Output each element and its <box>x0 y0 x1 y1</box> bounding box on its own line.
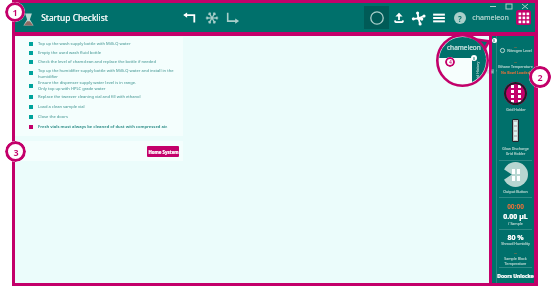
staticText: Load a clean sample vial <box>38 104 85 110</box>
button[interactable]: Close <box>520 3 529 9</box>
button[interactable]: Return <box>182 10 197 25</box>
staticText: 0 <box>493 38 496 43</box>
staticText: 0.00 µL <box>503 212 528 222</box>
staticText: 1 <box>12 6 18 18</box>
staticText: Top up the wash supply bottle with Milli… <box>38 41 131 47</box>
button[interactable]: Apps grid <box>516 10 531 25</box>
staticText: Empty the used wash fluid bottle <box>38 50 102 56</box>
button[interactable]: Upload <box>393 12 405 24</box>
staticText: Startup Checklist <box>41 12 108 23</box>
button[interactable]: Home System <box>147 146 179 157</box>
staticText: chameleon <box>472 13 509 23</box>
staticText: 00:00 <box>507 202 524 211</box>
button[interactable]: Check the level of chamclean and replace… <box>29 57 177 67</box>
staticText: Doors Unlocked <box>497 273 534 280</box>
staticText: Grid History <box>479 68 509 73</box>
staticText: No Bowl Loaded <box>501 70 530 75</box>
staticText: ? <box>458 13 462 24</box>
staticText: Home System <box>148 149 179 155</box>
button[interactable]: Grid Holder <box>504 82 527 105</box>
staticText: Top up the humidifier supply bottle with… <box>38 68 177 79</box>
staticText: Sample Block Temperature <box>504 256 527 266</box>
button[interactable]: Maximize <box>504 3 513 9</box>
staticText: Shroud Humidity <box>501 241 530 246</box>
button[interactable]: Ensure the dispenser supply water level … <box>29 79 177 92</box>
button[interactable]: Replace the tweezer cleaning vial and fi… <box>29 92 177 102</box>
staticText: Ensure the dispenser supply water level … <box>38 80 137 91</box>
staticText: Check the level of chamclean and replace… <box>38 59 156 65</box>
button[interactable]: Help <box>454 12 466 24</box>
button[interactable]: Workflow <box>412 11 426 25</box>
button[interactable]: Load a clean sample vial <box>29 102 177 111</box>
button[interactable]: Top up the wash supply bottle with Milli… <box>29 39 177 48</box>
button[interactable]: Fresh vials must always be cleaned of du… <box>29 122 177 131</box>
button[interactable]: Grid History <box>492 36 497 283</box>
staticText: -- <box>514 44 517 49</box>
staticText: Grid Holder <box>506 107 526 112</box>
button[interactable]: Status <box>364 6 389 29</box>
staticText: Nitrogen Level <box>507 48 532 53</box>
button[interactable]: Minimize <box>488 3 497 9</box>
staticText: Fresh vials must always be cleaned of du… <box>38 124 168 130</box>
staticText: chameleon <box>447 43 481 52</box>
button[interactable]: App icon <box>20 11 37 28</box>
staticText: Close the doors <box>38 114 68 120</box>
staticText: 2 <box>537 71 543 83</box>
staticText: 3 <box>13 146 19 158</box>
staticText: Grid History <box>475 61 480 82</box>
staticText: 0 <box>473 56 476 61</box>
staticText: Output Button <box>503 189 528 194</box>
button[interactable]: Top up the humidifier supply bottle with… <box>29 67 177 79</box>
button[interactable]: Menu <box>432 11 446 25</box>
staticText: -- <box>514 59 517 64</box>
button[interactable]: Next <box>225 10 240 25</box>
staticText: Replace the tweezer cleaning vial and fi… <box>38 94 141 100</box>
button[interactable]: Close the doors <box>29 111 177 122</box>
button[interactable]: Glow Discharge Grid Holder <box>513 120 518 141</box>
staticText: Ethane Temperature <box>498 64 533 69</box>
staticText: 80 % <box>507 233 524 243</box>
button[interactable]: Empty the used wash fluid bottle <box>29 48 177 57</box>
staticText: 4 <box>449 59 452 66</box>
staticText: -- <box>514 250 517 255</box>
staticText: Glow Discharge Grid Holder <box>502 146 529 156</box>
button[interactable]: Output Button <box>503 162 528 187</box>
button[interactable]: Freeze <box>205 11 219 25</box>
staticText: / Sample <box>508 221 523 226</box>
